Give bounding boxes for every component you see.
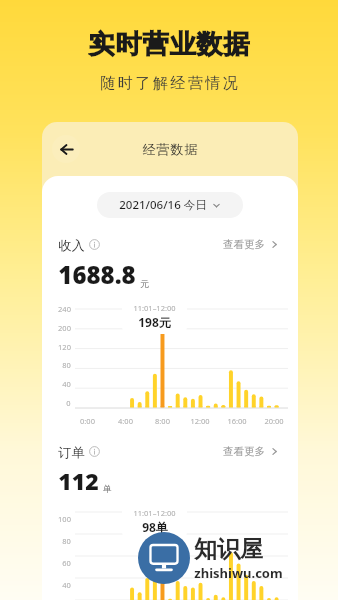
staticText: 198元 [138,314,171,330]
staticText: 4:00 [118,416,133,426]
staticText: 80 [62,536,71,546]
staticText: 0:00 [80,416,95,426]
button[interactable]: Info [89,239,100,250]
staticText: 单 [103,483,112,494]
staticText: 11:01–12:00 [133,303,176,313]
button[interactable]: 查看更多 [220,442,282,461]
staticText: 订单 [58,444,85,460]
staticText: 11:01–12:00 [133,508,176,518]
button[interactable]: Info [89,446,100,457]
staticText: 0 [66,398,71,408]
staticText: 240 [58,304,71,314]
staticText: 8:00 [155,416,170,426]
staticText: 112 [58,465,99,496]
staticText: 200 [58,323,71,333]
staticText: 2021/06/16 今日 [119,197,207,213]
staticText: 40 [62,580,71,590]
staticText: 查看更多 [223,238,265,251]
staticText: 16:00 [227,416,247,426]
staticText: 收入 [58,237,85,253]
staticText: 1688.8 [58,258,136,291]
staticText: 120 [58,342,71,352]
staticText: 元 [140,278,149,289]
staticText: 实时营业数据 [88,28,250,61]
button[interactable]: 查看更多 [220,235,282,254]
staticText: 40 [62,379,71,389]
button[interactable]: Back [52,135,80,163]
staticText: 12:00 [190,416,210,426]
staticText: 经营数据 [142,141,198,157]
staticText: 知识屋 [194,535,263,564]
staticText: 查看更多 [223,445,265,458]
staticText: 随时了解经营情况 [99,74,239,93]
staticText: zhishiwu.com [194,564,283,582]
button[interactable]: 2021/06/16 今日 [97,192,243,218]
staticText: 100 [58,514,71,524]
staticText: 60 [62,558,71,568]
staticText: 98单 [142,519,168,535]
staticText: 80 [62,360,71,370]
staticText: 20:00 [264,416,284,426]
